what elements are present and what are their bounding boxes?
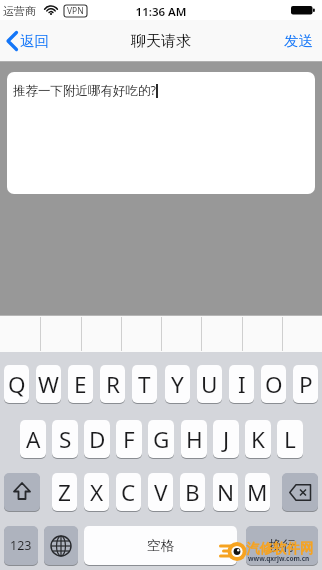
staticText: K bbox=[251, 424, 265, 455]
staticText: M bbox=[247, 477, 268, 508]
button[interactable]: R bbox=[100, 365, 125, 403]
button[interactable] bbox=[4, 473, 40, 511]
button[interactable]: Y bbox=[165, 365, 190, 403]
staticText: E bbox=[74, 369, 87, 400]
staticText: I bbox=[238, 369, 246, 400]
staticText: 汽修软件网 bbox=[246, 540, 314, 557]
staticText: T bbox=[138, 369, 151, 400]
button[interactable]: B bbox=[180, 473, 205, 511]
staticText: 聊天请求 bbox=[131, 32, 191, 51]
staticText: 返回 bbox=[20, 32, 49, 50]
staticText: W bbox=[38, 369, 59, 400]
button[interactable]: Z bbox=[52, 473, 77, 511]
button[interactable]: E bbox=[68, 365, 93, 403]
button[interactable]: 换行 bbox=[246, 526, 318, 565]
staticText: D bbox=[89, 424, 106, 455]
staticText: O bbox=[265, 369, 283, 400]
button[interactable]: M bbox=[245, 473, 270, 511]
button[interactable] bbox=[282, 473, 318, 511]
staticText: 空格 bbox=[147, 537, 174, 554]
staticText: S bbox=[59, 424, 72, 455]
staticText: 换行 bbox=[269, 537, 296, 554]
button[interactable]: J bbox=[213, 420, 239, 458]
staticText: L bbox=[284, 424, 296, 455]
staticText: H bbox=[186, 424, 203, 455]
staticText: Z bbox=[58, 477, 71, 508]
button[interactable]: N bbox=[213, 473, 238, 511]
staticText: C bbox=[121, 477, 136, 508]
button[interactable]: I bbox=[229, 365, 254, 403]
staticText: VPN bbox=[67, 5, 84, 17]
staticText: V bbox=[154, 477, 168, 508]
button[interactable]: D bbox=[84, 420, 110, 458]
staticText: 11:36 AM bbox=[0, 4, 322, 20]
staticText: 推荐一下附近哪有好吃的? bbox=[13, 82, 156, 99]
staticText: 发送 bbox=[284, 32, 313, 50]
button[interactable]: O bbox=[261, 365, 286, 403]
staticText: N bbox=[217, 477, 235, 508]
button[interactable]: V bbox=[148, 473, 173, 511]
button[interactable]: W bbox=[36, 365, 61, 403]
button[interactable]: U bbox=[197, 365, 222, 403]
button[interactable]: Q bbox=[4, 365, 29, 403]
button[interactable]: 空格 bbox=[84, 526, 237, 565]
button[interactable]: S bbox=[52, 420, 78, 458]
button[interactable]: T bbox=[132, 365, 157, 403]
button[interactable] bbox=[44, 526, 78, 565]
staticText: X bbox=[90, 477, 104, 508]
staticText: Q bbox=[8, 369, 26, 400]
button[interactable]: G bbox=[148, 420, 174, 458]
staticText: Y bbox=[171, 369, 184, 400]
staticText: B bbox=[185, 477, 200, 508]
button[interactable]: 发送 bbox=[278, 20, 318, 62]
button[interactable]: H bbox=[181, 420, 207, 458]
staticText: F bbox=[123, 424, 135, 455]
staticText: www.qxrjw.com.cn bbox=[248, 554, 310, 563]
staticText: A bbox=[26, 424, 41, 455]
staticText: R bbox=[106, 369, 120, 400]
button[interactable]: K bbox=[245, 420, 271, 458]
staticText: G bbox=[153, 424, 170, 455]
staticText: U bbox=[201, 369, 218, 400]
staticText: P bbox=[299, 369, 313, 400]
staticText: 123 bbox=[10, 537, 32, 554]
button[interactable]: A bbox=[20, 420, 46, 458]
button[interactable]: C bbox=[116, 473, 141, 511]
button[interactable]: 123 bbox=[4, 526, 38, 565]
button[interactable]: 返回 bbox=[6, 20, 49, 62]
button[interactable]: F bbox=[116, 420, 142, 458]
button[interactable]: X bbox=[84, 473, 109, 511]
button[interactable]: 推荐一下附近哪有好吃的? bbox=[7, 72, 315, 194]
button[interactable]: L bbox=[277, 420, 303, 458]
staticText: J bbox=[223, 424, 230, 455]
button[interactable]: P bbox=[293, 365, 318, 403]
staticText: 运营商 bbox=[3, 4, 36, 18]
